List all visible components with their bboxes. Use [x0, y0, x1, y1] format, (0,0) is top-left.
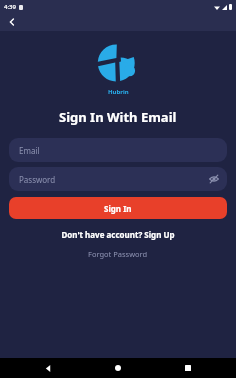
- button[interactable]: Home: [110, 360, 126, 376]
- button[interactable]: Sign In: [9, 197, 227, 219]
- button[interactable]: Recent apps: [180, 360, 196, 376]
- staticText: Password: [19, 174, 56, 185]
- staticText: Hubrin: [108, 88, 129, 96]
- button[interactable]: Don't have account? Sign Up: [57, 228, 179, 241]
- staticText: Email: [19, 145, 40, 156]
- button[interactable]: Show password: [207, 172, 221, 186]
- staticText: Forgot Password: [88, 249, 148, 259]
- button[interactable]: Email: [9, 138, 227, 162]
- button[interactable]: Forgot Password: [84, 248, 152, 260]
- staticText: Sign In With Email: [59, 108, 177, 126]
- button[interactable]: Password: [9, 167, 227, 191]
- staticText: Sign In: [104, 203, 132, 214]
- button[interactable]: Back: [40, 360, 56, 376]
- button[interactable]: Back: [4, 14, 20, 30]
- staticText: Don't have account? Sign Up: [61, 229, 175, 240]
- staticText: 4:39: [4, 3, 16, 11]
